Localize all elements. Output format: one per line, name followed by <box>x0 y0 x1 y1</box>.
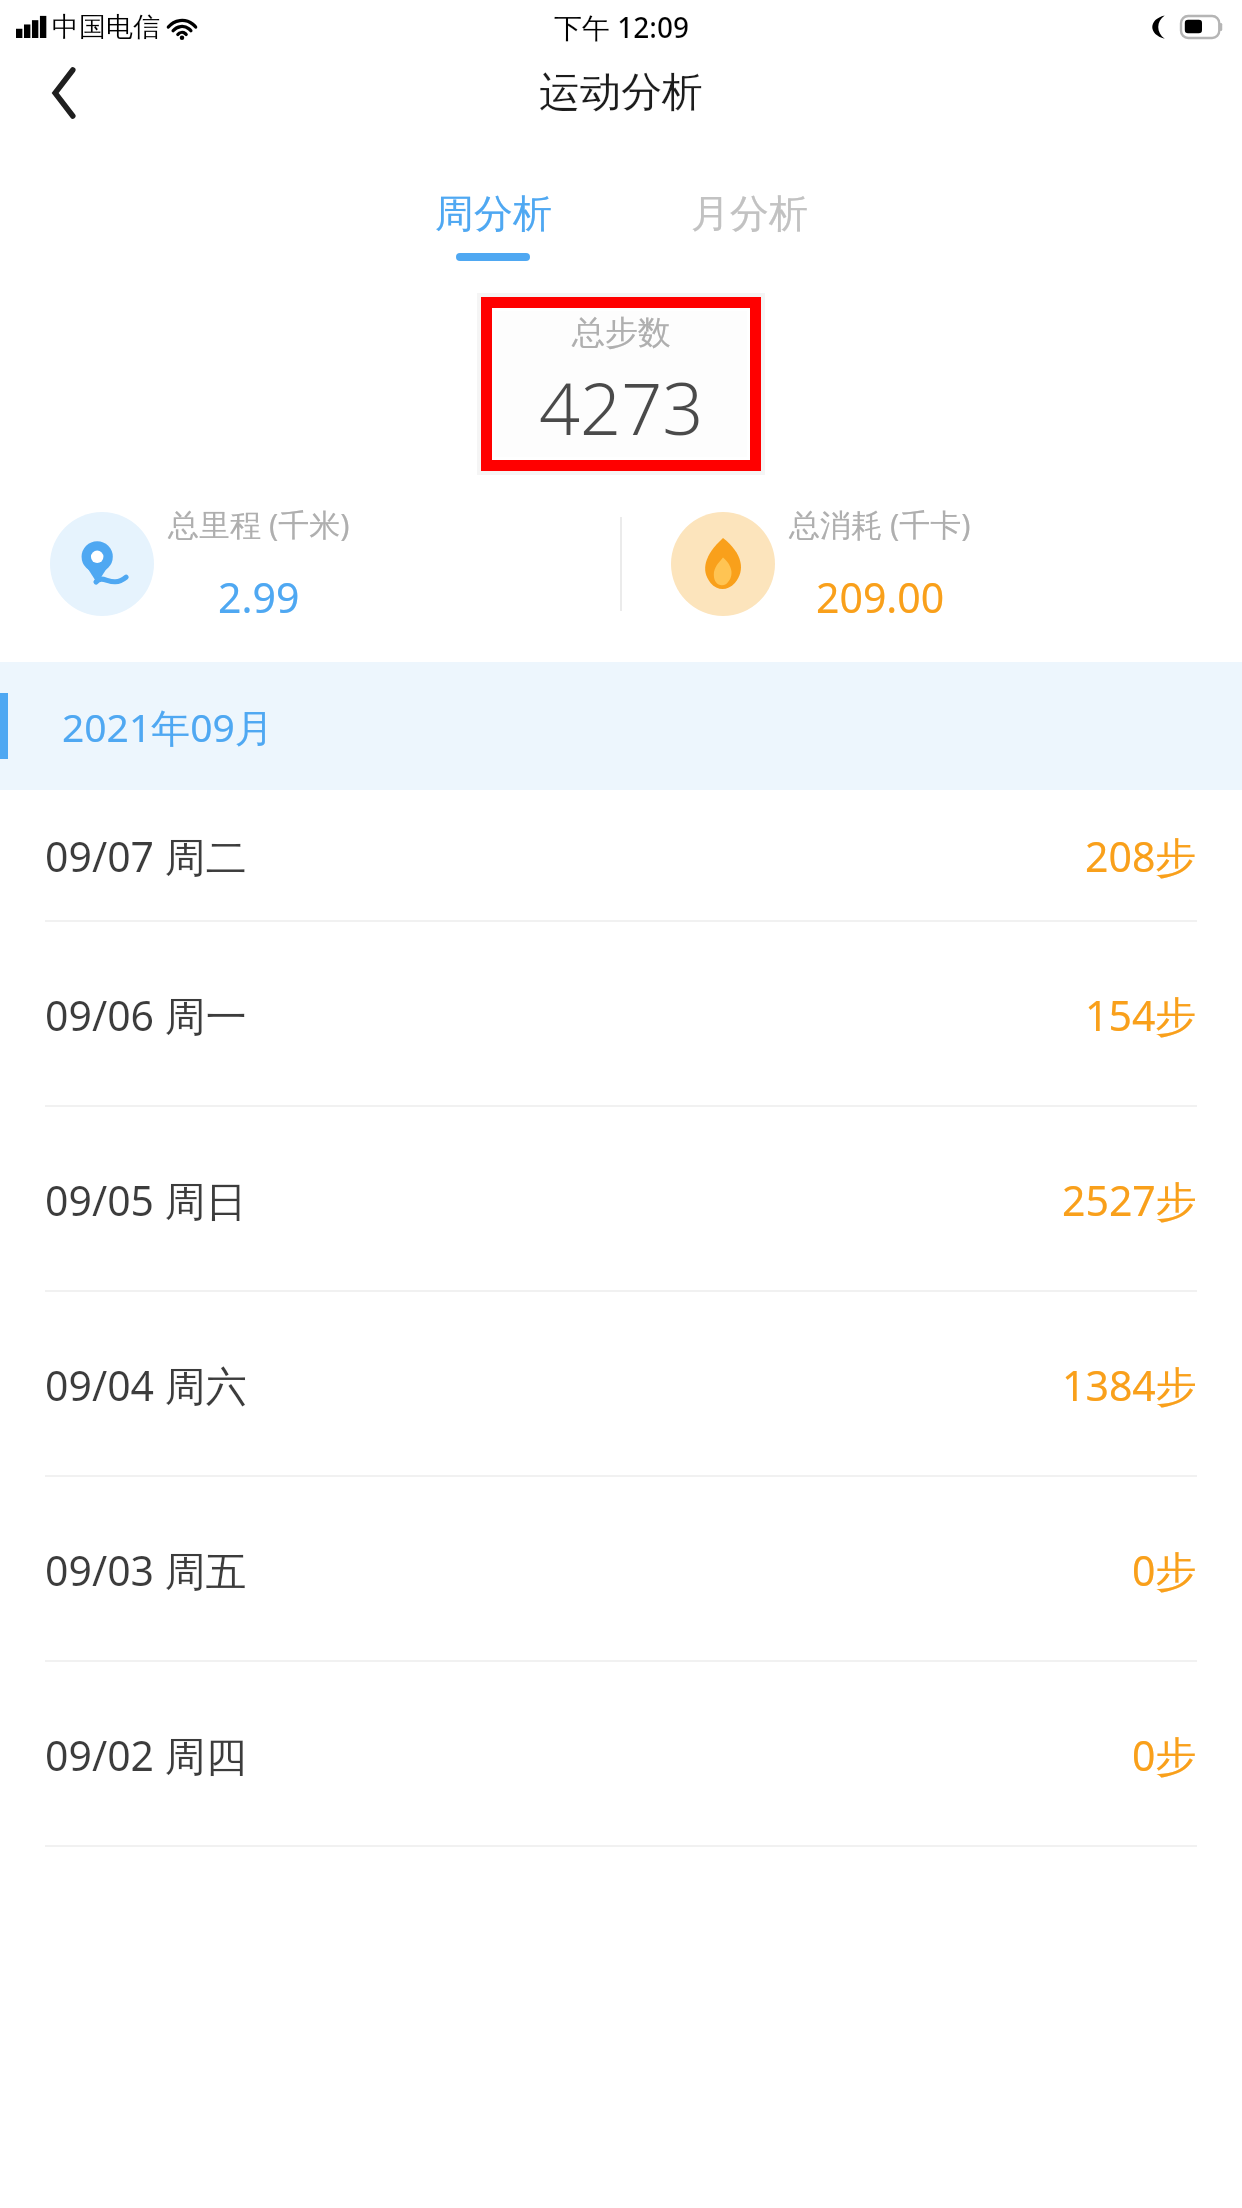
staticText: 154步 <box>1085 987 1197 1043</box>
staticText: 2021年09月 <box>62 700 274 753</box>
staticText: 09/06 周一 <box>45 987 247 1043</box>
staticText: 运动分析 <box>539 67 703 119</box>
button[interactable]: 月分析 <box>641 189 857 238</box>
button[interactable]: 周分析 <box>385 189 601 261</box>
staticText: 总消耗 (千卡) <box>789 503 971 545</box>
staticText: 2.99 <box>218 569 300 625</box>
staticText: 0步 <box>1132 1542 1197 1598</box>
staticText: 09/04 周六 <box>45 1357 247 1413</box>
staticText: 09/03 周五 <box>45 1542 247 1598</box>
button[interactable]: 09/07 周二 <box>0 790 1242 922</box>
button[interactable]: 总消耗 (千卡) <box>621 488 1242 640</box>
staticText: 09/02 周四 <box>45 1727 247 1783</box>
staticText: 总里程 (千米) <box>168 503 350 545</box>
staticText: 总步数 <box>572 312 671 354</box>
staticText: 0步 <box>1132 1727 1197 1783</box>
staticText: 2527步 <box>1062 1172 1197 1228</box>
button[interactable]: 09/03 周五 <box>0 1477 1242 1662</box>
staticText: 月分析 <box>691 189 808 238</box>
staticText: 1384步 <box>1062 1357 1197 1413</box>
staticText: 09/05 周日 <box>45 1172 247 1228</box>
button[interactable]: 总里程 (千米) <box>0 488 621 640</box>
staticText: 周分析 <box>435 189 552 238</box>
staticText: 09/07 周二 <box>45 828 247 884</box>
staticText: 4273 <box>539 358 704 456</box>
button[interactable]: 09/04 周六 <box>0 1292 1242 1477</box>
staticText: 209.00 <box>816 569 945 625</box>
button[interactable]: 09/02 周四 <box>0 1662 1242 1847</box>
button[interactable]: Back <box>30 58 100 128</box>
button[interactable]: 09/05 周日 <box>0 1107 1242 1292</box>
button[interactable]: 09/06 周一 <box>0 922 1242 1107</box>
staticText: 下午 12:09 <box>554 8 689 46</box>
staticText: 208步 <box>1085 828 1197 884</box>
staticText: 中国电信 <box>52 10 160 44</box>
